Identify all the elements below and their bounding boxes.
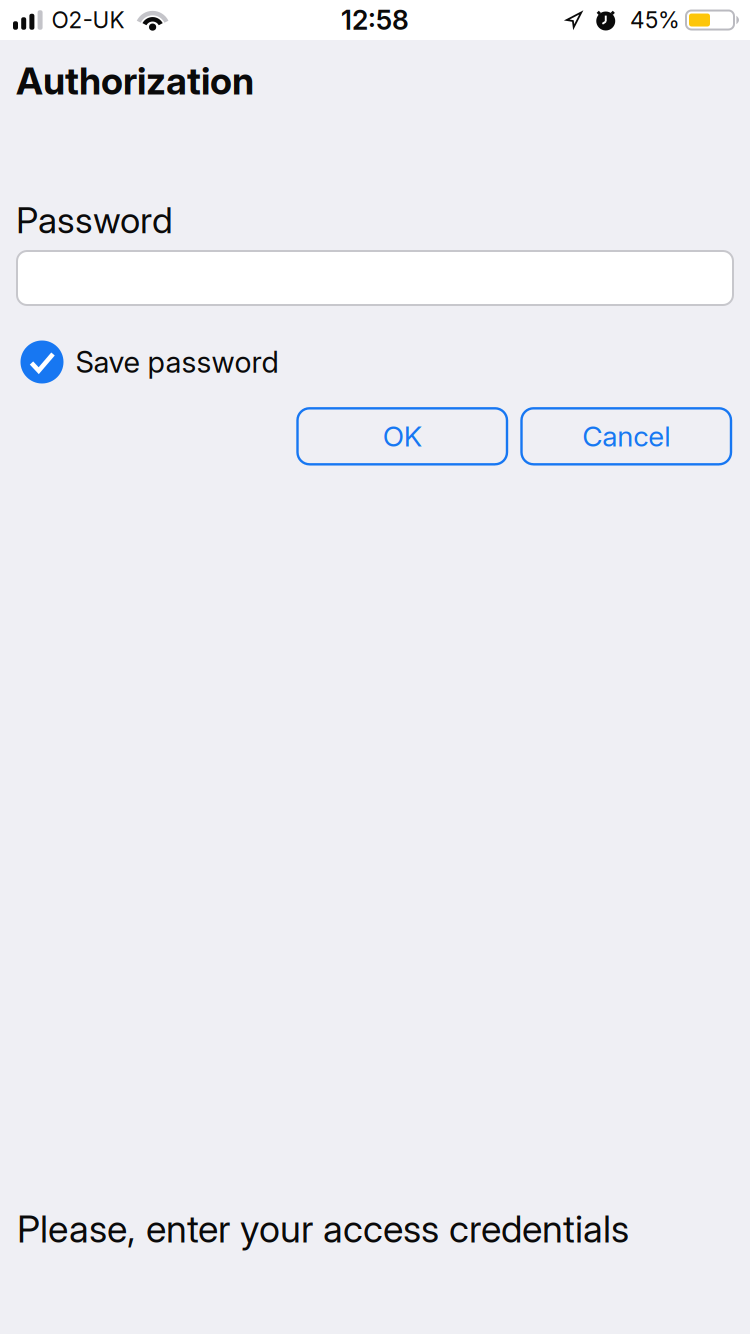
button[interactable]: Cancel — [521, 408, 731, 464]
staticText: O2-UK — [52, 7, 125, 33]
staticText: 12:58 — [341, 4, 409, 36]
button[interactable]: OK — [297, 408, 507, 464]
staticText: Cancel — [582, 420, 670, 453]
staticText: Password — [16, 199, 173, 241]
staticText: 45% — [630, 7, 680, 33]
staticText: Authorization — [16, 59, 254, 103]
button[interactable]: Save password — [20, 340, 278, 383]
button[interactable]: Password — [16, 250, 734, 306]
staticText: Please, enter your access credentials — [17, 1207, 629, 1251]
staticText: Save password — [75, 345, 278, 379]
staticText: OK — [383, 420, 422, 453]
